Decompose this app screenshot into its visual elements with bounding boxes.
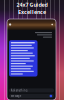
staticText: Message <box>11 94 22 98</box>
staticText: Excellence <box>18 8 46 15</box>
staticText: Ask anything <box>11 89 28 92</box>
button[interactable]: Message <box>9 94 54 98</box>
button[interactable]: Ask anything <box>9 88 54 92</box>
staticText: 24x7 Guided <box>16 1 47 8</box>
